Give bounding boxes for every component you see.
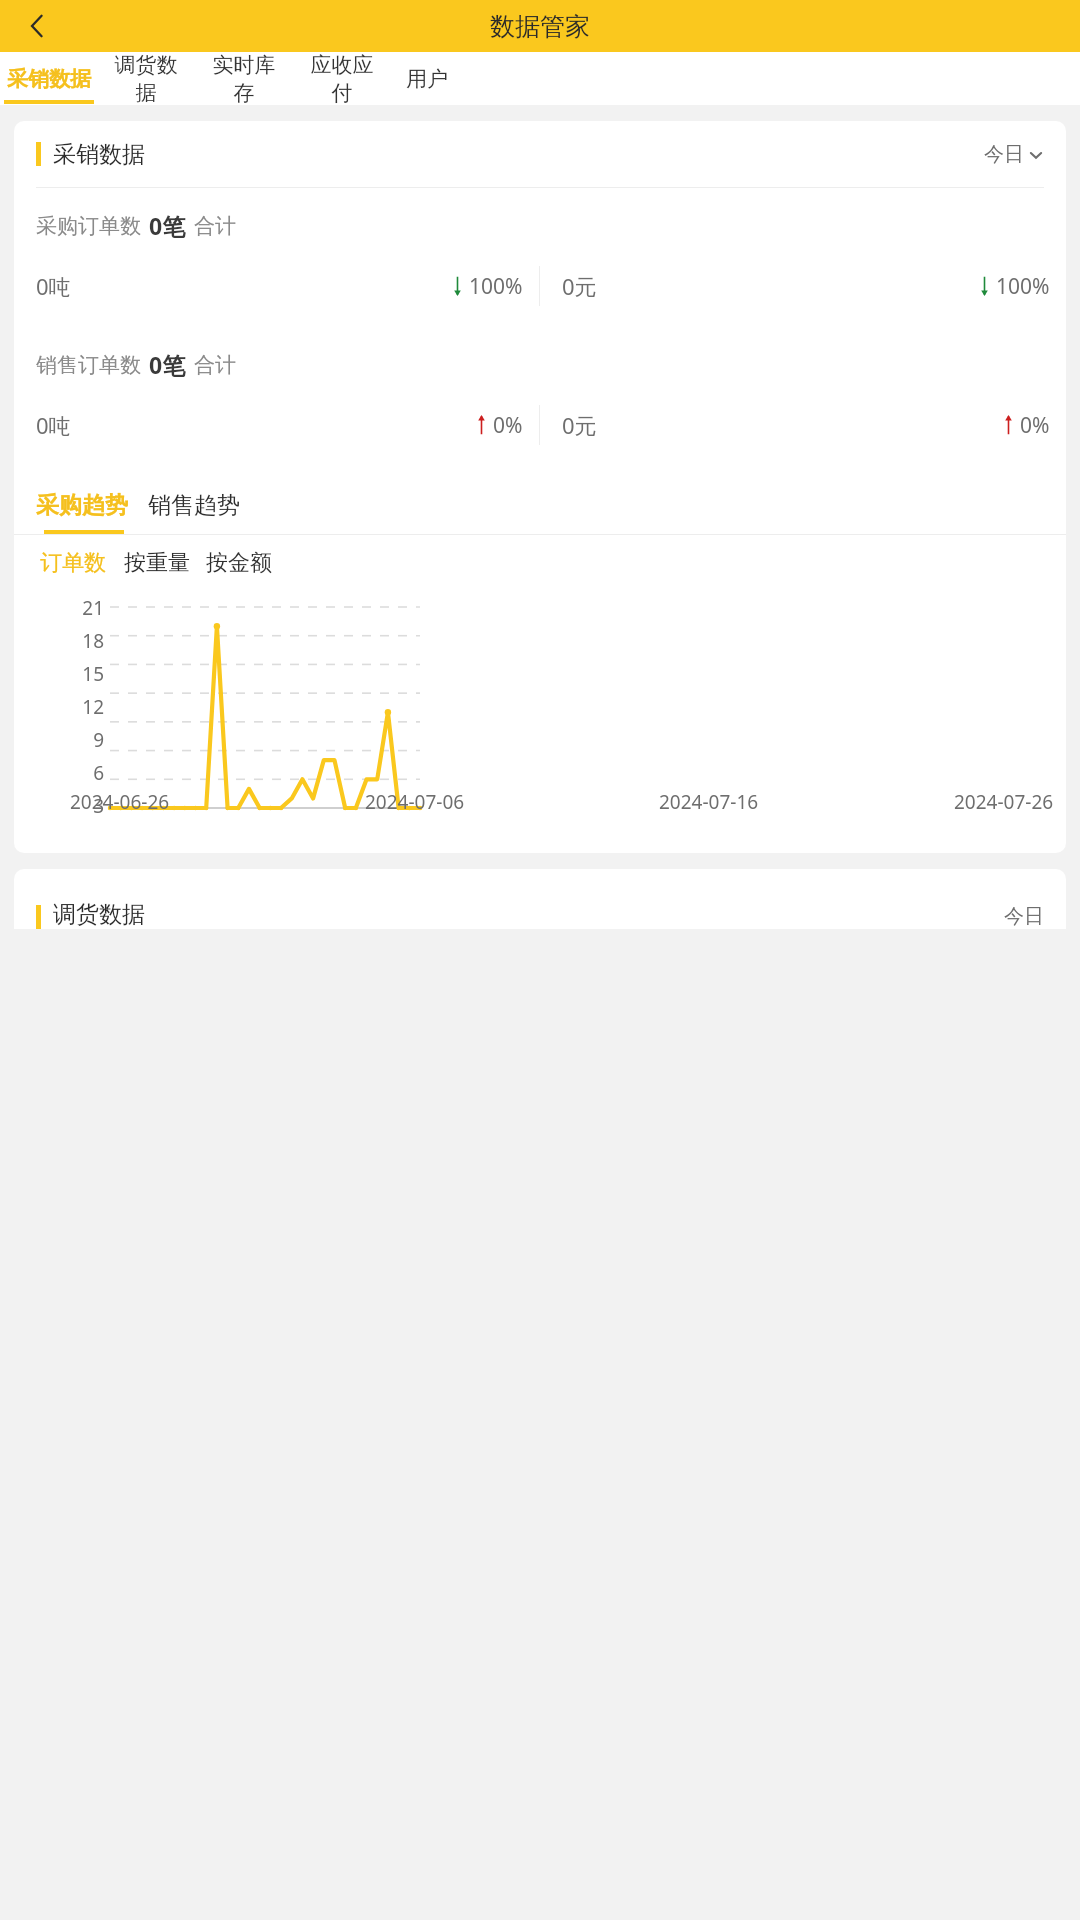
staticText: 调货数据 — [53, 900, 145, 929]
staticText: 调货数据 — [105, 52, 187, 105]
staticText: 采销数据 — [53, 140, 145, 169]
button[interactable]: 按重量 — [124, 549, 190, 577]
staticText: 2024-06-26 — [70, 789, 170, 815]
staticText: 采销数据 — [7, 66, 91, 92]
button[interactable]: 用户 — [402, 52, 452, 105]
staticText: 按重量 — [124, 549, 190, 577]
staticText: 今日 — [984, 142, 1024, 167]
staticText: 合计 — [194, 213, 236, 239]
button[interactable]: 采销数据 — [4, 52, 94, 105]
staticText: 0吨 — [36, 271, 71, 301]
button[interactable]: 今日 — [984, 142, 1044, 167]
staticText: 9 — [93, 727, 104, 753]
staticText: 12 — [82, 694, 104, 720]
staticText: 0笔 — [149, 210, 186, 241]
button[interactable]: Back — [14, 2, 62, 50]
staticText: 2024-07-16 — [659, 789, 759, 815]
button[interactable]: 调货数据 — [105, 52, 187, 105]
staticText: 2024-07-06 — [365, 789, 465, 815]
staticText: 按金额 — [206, 549, 272, 577]
staticText: 销售趋势 — [148, 491, 240, 520]
staticText: 0吨 — [36, 410, 71, 440]
staticText: 3 — [93, 793, 104, 819]
staticText: 21 — [82, 595, 104, 621]
button[interactable]: 按金额 — [206, 549, 272, 577]
staticText: 采购趋势 — [36, 491, 128, 520]
staticText: 今日 — [1004, 904, 1044, 929]
staticText: 采购订单数 — [36, 213, 141, 239]
staticText: 18 — [82, 628, 104, 654]
button[interactable]: 订单数 — [40, 549, 106, 577]
staticText: 应收应付 — [301, 52, 383, 105]
button[interactable]: 应收应付 — [301, 52, 383, 105]
staticText: 0元 — [562, 271, 597, 301]
staticText: 15 — [82, 661, 104, 687]
button[interactable]: 实时库存 — [203, 52, 285, 105]
button[interactable]: 销售趋势 — [148, 476, 240, 534]
staticText: 用户 — [406, 66, 448, 92]
staticText: 100% — [469, 272, 523, 301]
staticText: 0% — [1020, 411, 1050, 440]
staticText: 100% — [996, 272, 1050, 301]
staticText: 合计 — [194, 352, 236, 378]
staticText: 0元 — [562, 410, 597, 440]
staticText: 数据管家 — [490, 11, 590, 42]
staticText: 实时库存 — [203, 52, 285, 105]
staticText: 6 — [93, 760, 104, 786]
staticText: 0% — [493, 411, 523, 440]
button[interactable]: 采购趋势 — [36, 476, 128, 534]
staticText: 销售订单数 — [36, 352, 141, 378]
staticText: 2024-07-26 — [954, 789, 1054, 815]
staticText: 订单数 — [40, 549, 106, 577]
staticText: 0笔 — [149, 349, 186, 380]
